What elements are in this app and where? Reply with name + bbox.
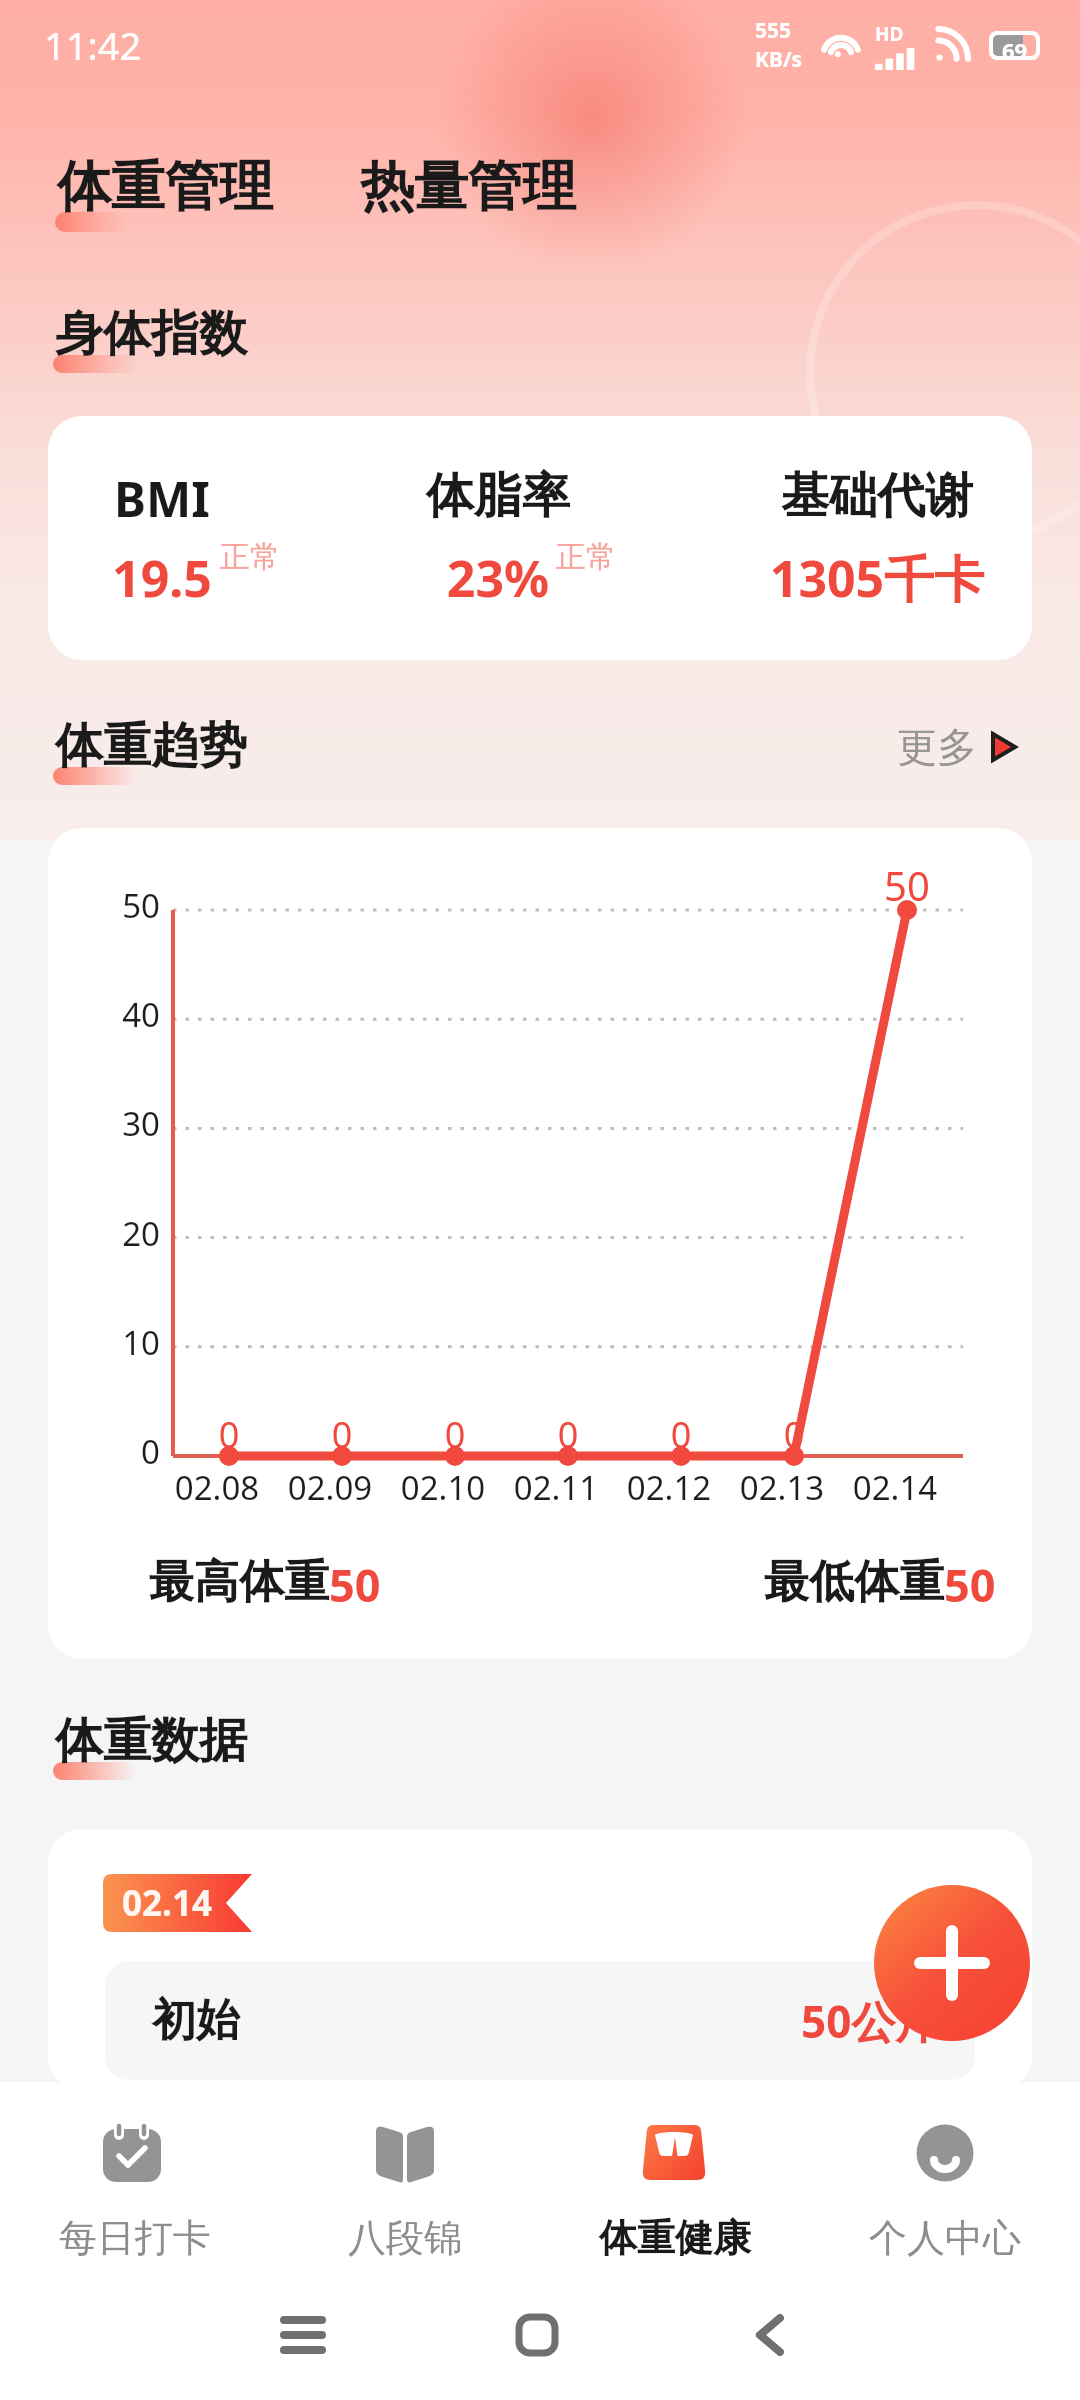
staticText: 0: [312, 1410, 372, 1459]
staticText: 11:42: [44, 19, 142, 71]
staticText: 02.11: [494, 1465, 618, 1510]
staticText: BMI: [48, 466, 422, 531]
staticText: 每日打卡: [59, 2214, 211, 2262]
button[interactable]: BMI: [48, 416, 1032, 660]
staticText: 更多: [897, 722, 977, 772]
button[interactable]: Recent apps: [255, 2287, 351, 2383]
button[interactable]: Home: [489, 2287, 585, 2383]
button[interactable]: 体重趋势: [55, 716, 247, 776]
staticText: 0: [64, 1429, 160, 1474]
staticText: 02.09: [268, 1465, 392, 1510]
staticText: 最高体重: [149, 1554, 329, 1611]
button[interactable]: 每日打卡: [0, 2082, 270, 2278]
staticText: 20: [64, 1211, 160, 1256]
staticText: KB/s: [755, 45, 803, 74]
staticText: 30: [64, 1101, 160, 1146]
staticText: 50: [857, 858, 957, 912]
button[interactable]: Add weight record: [874, 1885, 1030, 2041]
staticText: 50: [329, 1554, 381, 1615]
button[interactable]: 初始: [105, 1961, 975, 2080]
button[interactable]: 八段锦: [270, 2082, 540, 2278]
staticText: 02.14: [122, 1879, 212, 1927]
staticText: 0: [651, 1410, 711, 1459]
button[interactable]: Back: [722, 2287, 818, 2383]
staticText: 02.13: [720, 1465, 844, 1510]
staticText: 0: [538, 1410, 598, 1459]
staticText: 基础代谢: [617, 466, 1032, 526]
staticText: 50: [64, 883, 160, 928]
staticText: 50: [944, 1554, 996, 1615]
staticText: 0: [764, 1410, 824, 1459]
staticText: 正常: [556, 538, 616, 576]
staticText: 0: [425, 1410, 485, 1459]
staticText: 初始: [152, 1993, 240, 2048]
staticText: 19.5: [48, 544, 422, 612]
staticText: 69: [1002, 35, 1028, 56]
staticText: 正常: [220, 538, 280, 576]
button[interactable]: 体重数据: [55, 1711, 247, 1771]
staticText: 02.14: [833, 1465, 957, 1510]
staticText: HD: [875, 21, 904, 47]
staticText: 02.10: [381, 1465, 505, 1510]
staticText: 最低体重: [764, 1554, 944, 1611]
button[interactable]: 热量管理: [360, 153, 576, 221]
staticText: 八段锦: [348, 2214, 462, 2262]
button[interactable]: 身体指数: [55, 304, 247, 364]
staticText: 02.08: [155, 1465, 279, 1510]
button[interactable]: 个人中心: [810, 2082, 1080, 2278]
button[interactable]: 体重健康: [540, 2082, 810, 2278]
staticText: 23%: [238, 544, 758, 612]
staticText: 02.12: [607, 1465, 731, 1510]
staticText: 50公斤: [801, 1991, 940, 2051]
button[interactable]: 更多: [897, 722, 1017, 772]
staticText: 体脂率: [238, 466, 758, 526]
button[interactable]: 体重管理: [57, 153, 273, 221]
staticText: 0: [199, 1410, 259, 1459]
staticText: 个人中心: [869, 2214, 1021, 2262]
staticText: 40: [64, 992, 160, 1037]
staticText: 1305千卡: [617, 544, 1032, 612]
staticText: 体重健康: [599, 2214, 751, 2262]
staticText: 555: [755, 16, 792, 45]
staticText: 10: [64, 1320, 160, 1365]
